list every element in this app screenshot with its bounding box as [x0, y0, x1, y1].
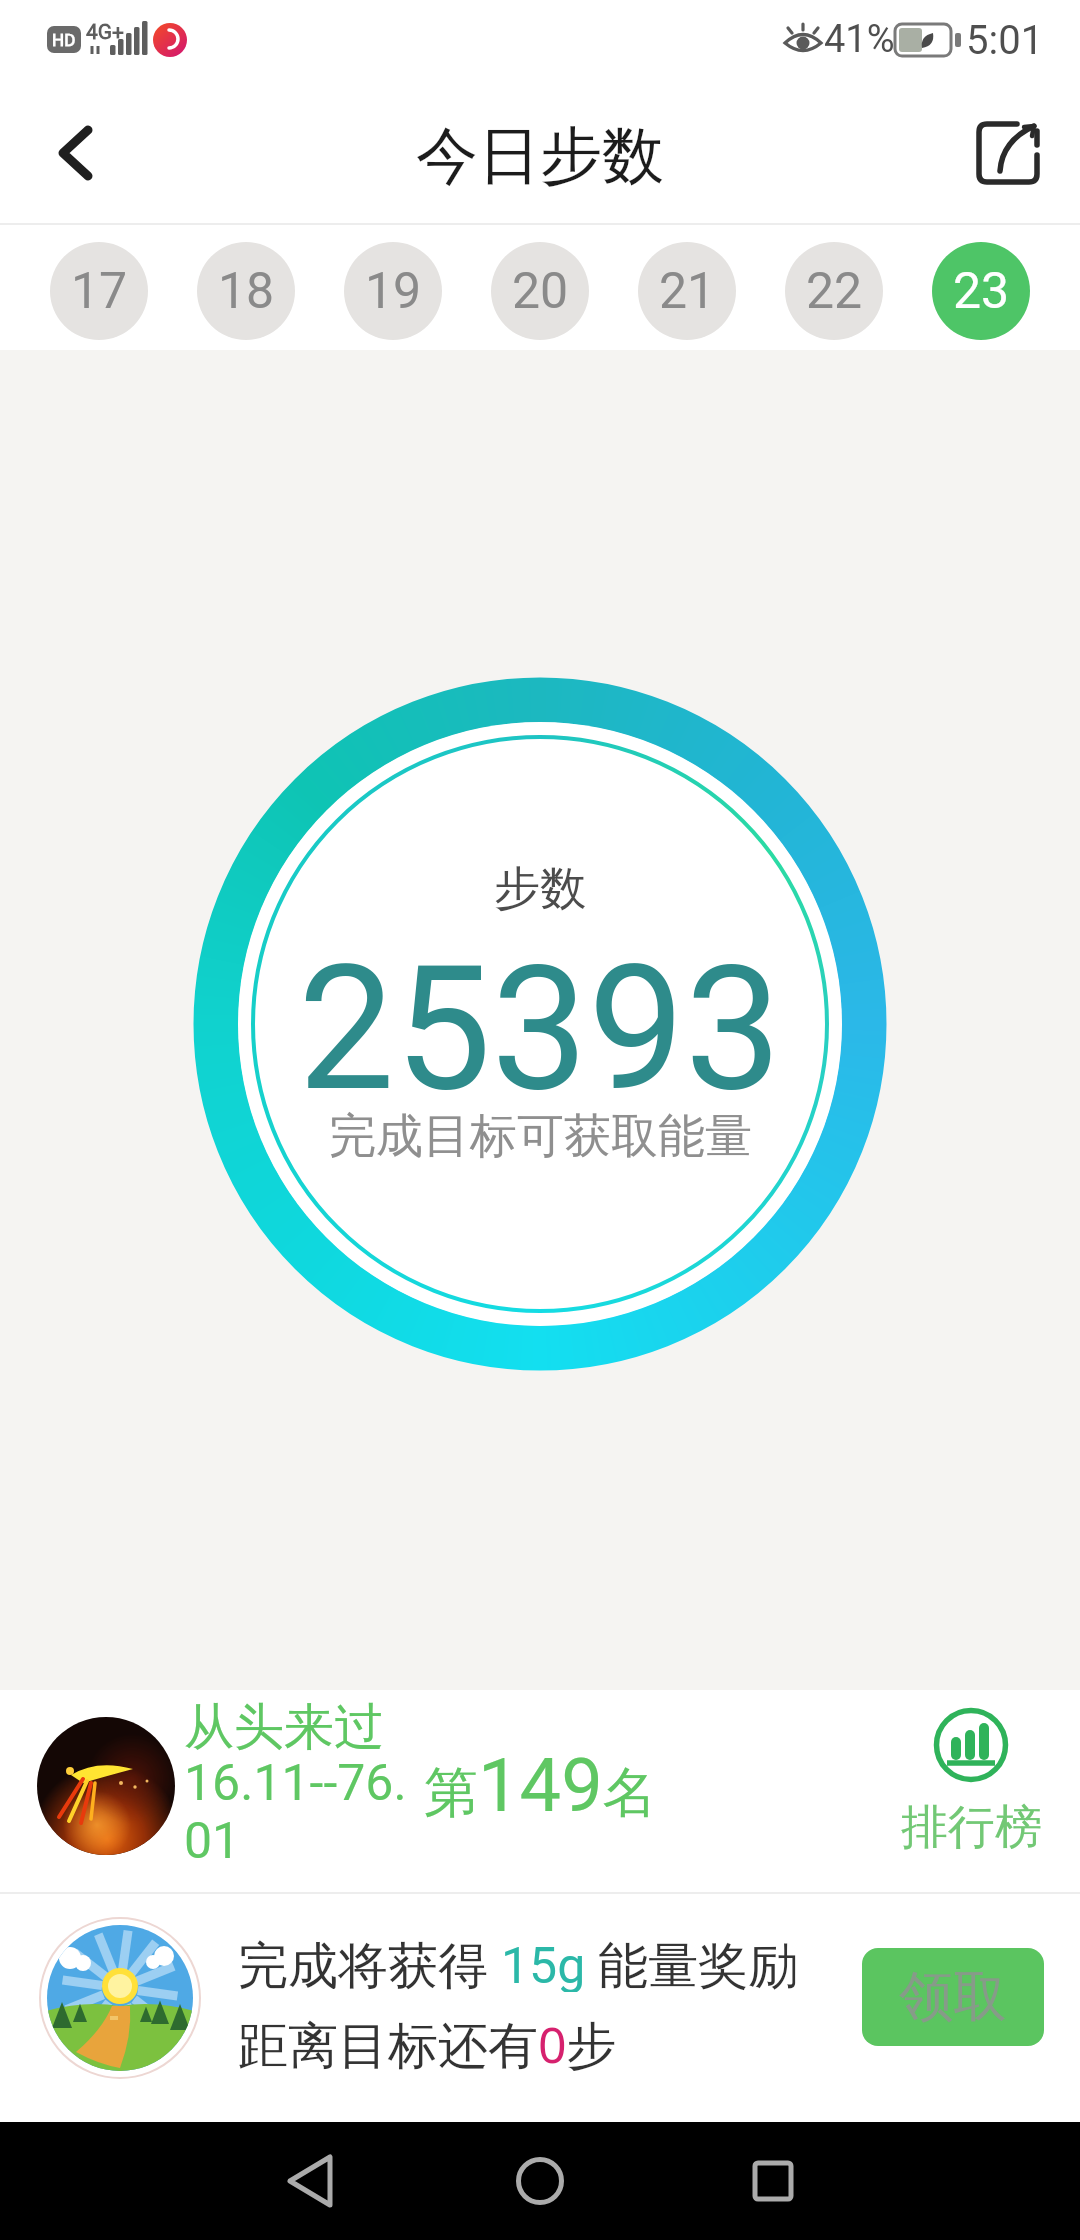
staticText: 19 [365, 262, 422, 321]
staticText: 完成目标可获取能量 [329, 1107, 752, 1166]
staticText: 41% [824, 17, 895, 62]
button[interactable]: 17 [50, 242, 148, 340]
staticText: 第149名 [424, 1742, 657, 1829]
staticText: 5:01 [966, 17, 1044, 64]
staticText: 25393 [298, 928, 782, 1130]
button[interactable]: 22 [785, 242, 883, 340]
staticText: 今日步数 [416, 117, 664, 195]
button[interactable] [230, 2122, 390, 2240]
staticText: 01 [184, 1812, 241, 1870]
staticText: HD [52, 30, 76, 50]
button[interactable]: 23 [932, 242, 1030, 340]
staticText: 步数 [494, 860, 586, 918]
staticText: 距离目标还有0步 [238, 2010, 617, 2072]
staticText: 21 [659, 262, 716, 321]
staticText: 4G+ [86, 20, 125, 44]
staticText: 完成将获得 15g 能量奖励 [238, 1930, 799, 1992]
button[interactable] [460, 2122, 620, 2240]
button[interactable]: 19 [344, 242, 442, 340]
button[interactable] [30, 105, 120, 200]
staticText: 22 [806, 262, 863, 321]
button[interactable] [693, 2122, 853, 2240]
staticText: 排行榜 [901, 1798, 1042, 1854]
staticText: 18 [218, 262, 275, 321]
button[interactable]: 20 [491, 242, 589, 340]
button[interactable]: 18 [197, 242, 295, 340]
button[interactable]: 21 [638, 242, 736, 340]
staticText: 20 [512, 262, 569, 321]
button[interactable]: 排行榜 [880, 1695, 1060, 1875]
button[interactable] [955, 100, 1060, 205]
staticText: 17 [71, 262, 128, 321]
staticText: 16.11--76. [184, 1754, 407, 1812]
staticText: 23 [953, 262, 1010, 321]
staticText: 从头来过 [184, 1696, 384, 1754]
button[interactable]: 领取 [862, 1948, 1044, 2046]
staticText: 领取 [899, 1963, 1007, 2031]
